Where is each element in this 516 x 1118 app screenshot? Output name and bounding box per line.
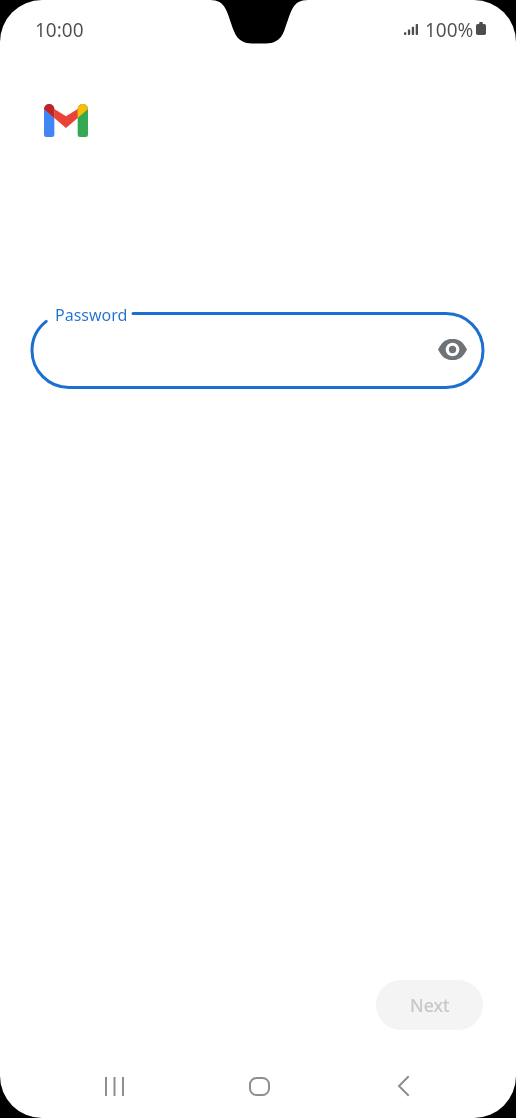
staticText: 10:00 [35,17,84,43]
button[interactable]: Password [32,313,483,387]
staticText: Next [410,993,450,1018]
staticText: Password [55,304,128,326]
button[interactable]: Show password [433,330,472,369]
button[interactable]: Home [211,1058,307,1114]
button[interactable]: Next [376,980,483,1030]
button[interactable]: Recent apps [66,1058,162,1114]
staticText: 100% [425,17,474,43]
button[interactable]: Back [355,1058,451,1114]
